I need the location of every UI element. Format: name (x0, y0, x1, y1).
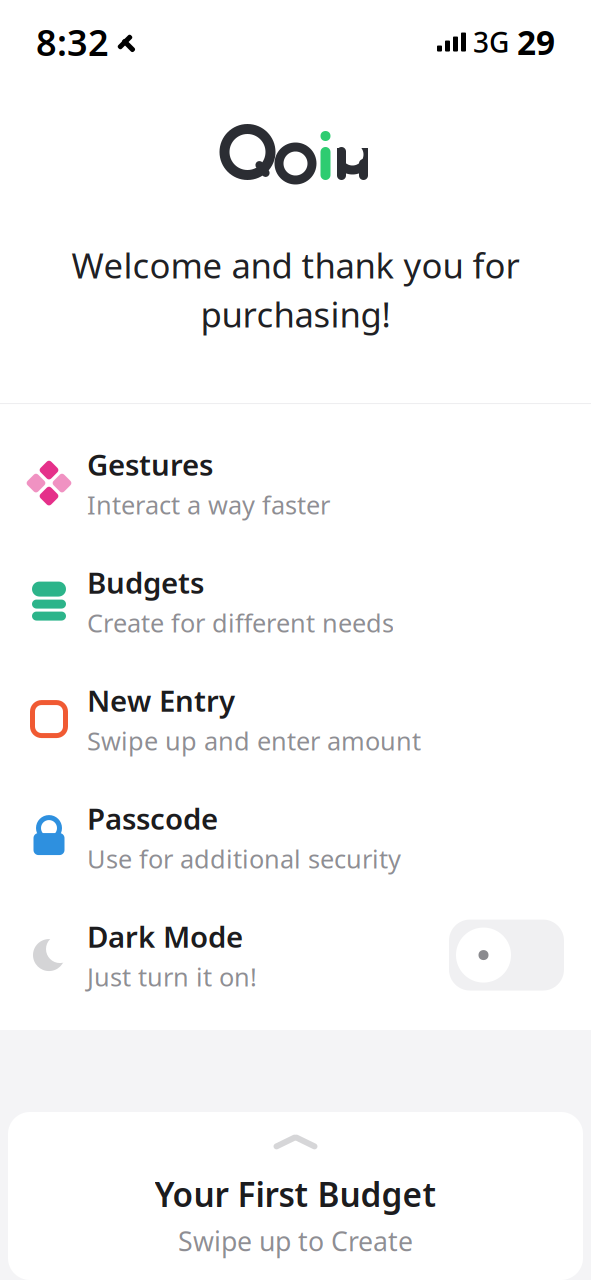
staticText: Swipe up and enter amount (87, 724, 421, 757)
staticText: Dark Mode (87, 917, 243, 956)
staticText: Your First Budget (154, 1172, 436, 1216)
staticText: Gestures (87, 445, 213, 484)
staticText: Swipe up to Create (178, 1223, 413, 1259)
staticText: Interact a way faster (87, 488, 330, 521)
staticText: 29 (517, 20, 555, 64)
staticText: Use for additional security (87, 842, 401, 875)
staticText: 8:32 (36, 18, 109, 66)
staticText: Create for different needs (87, 606, 394, 639)
button[interactable]: Dark Mode (0, 896, 591, 1014)
staticText: 3G (473, 23, 509, 61)
staticText: Welcome and thank you for (71, 242, 519, 288)
button[interactable]: Gestures (0, 424, 591, 542)
button[interactable]: Passcode (0, 778, 591, 896)
staticText: Just turn it on! (87, 960, 257, 993)
button[interactable]: New Entry (0, 660, 591, 778)
button[interactable]: Budgets (0, 542, 591, 660)
button[interactable]: Your First Budget (0, 1112, 591, 1280)
staticText: purchasing! (200, 291, 390, 337)
staticText: Budgets (87, 563, 204, 602)
staticText: Passcode (87, 799, 218, 838)
staticText: New Entry (87, 681, 235, 720)
